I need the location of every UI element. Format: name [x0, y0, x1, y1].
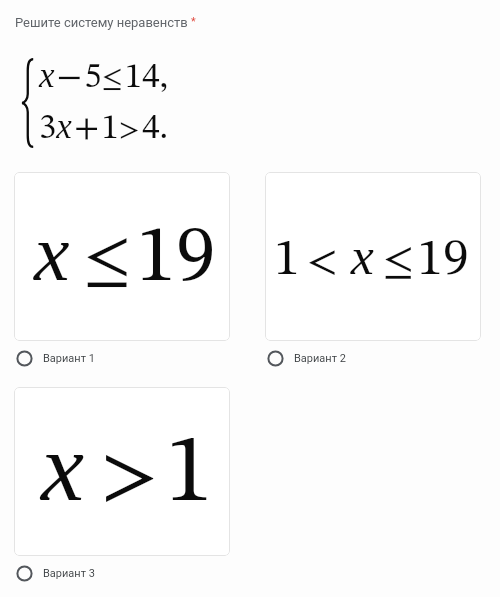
staticText: 3x + 1> 4.	[39, 107, 169, 147]
button[interactable]: Вариант 3	[14, 556, 230, 590]
button[interactable]: 1 < x ≤ 19	[265, 172, 481, 341]
staticText: Вариант 1	[43, 352, 95, 365]
button[interactable]: x ≤ 19	[14, 172, 230, 341]
staticText: Вариант 3	[43, 567, 95, 580]
staticText: 1 < x ≤ 19	[274, 228, 469, 287]
staticText: x − 5≤ 14,	[39, 56, 169, 96]
staticText: Решите систему неравенств	[15, 15, 188, 30]
staticText: *	[191, 15, 196, 28]
button[interactable]: x > 1	[14, 387, 230, 556]
button[interactable]: Вариант 2	[265, 341, 481, 375]
staticText: x > 1	[41, 414, 214, 524]
staticText: x ≤ 19	[34, 209, 216, 299]
staticText: Вариант 2	[294, 352, 346, 365]
button[interactable]: Вариант 1	[14, 341, 230, 375]
